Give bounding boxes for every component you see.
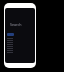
button[interactable] [7,33,14,36]
staticText: Search [10,22,22,27]
